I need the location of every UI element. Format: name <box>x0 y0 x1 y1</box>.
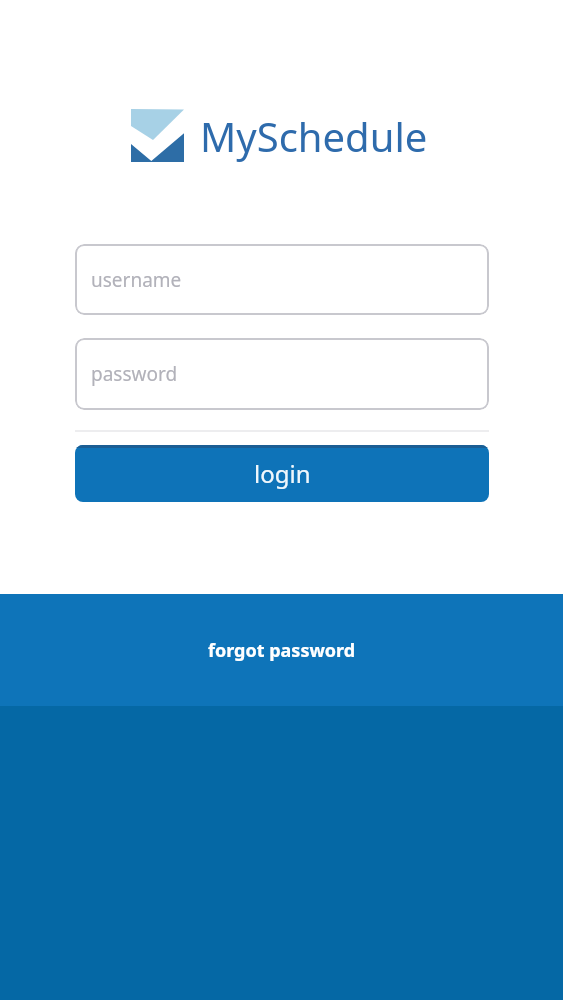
staticText: password <box>91 361 178 387</box>
staticText: MySchedule <box>200 109 428 162</box>
staticText: login <box>254 457 311 490</box>
staticText: username <box>91 267 182 293</box>
staticText: forgot password <box>208 638 356 663</box>
